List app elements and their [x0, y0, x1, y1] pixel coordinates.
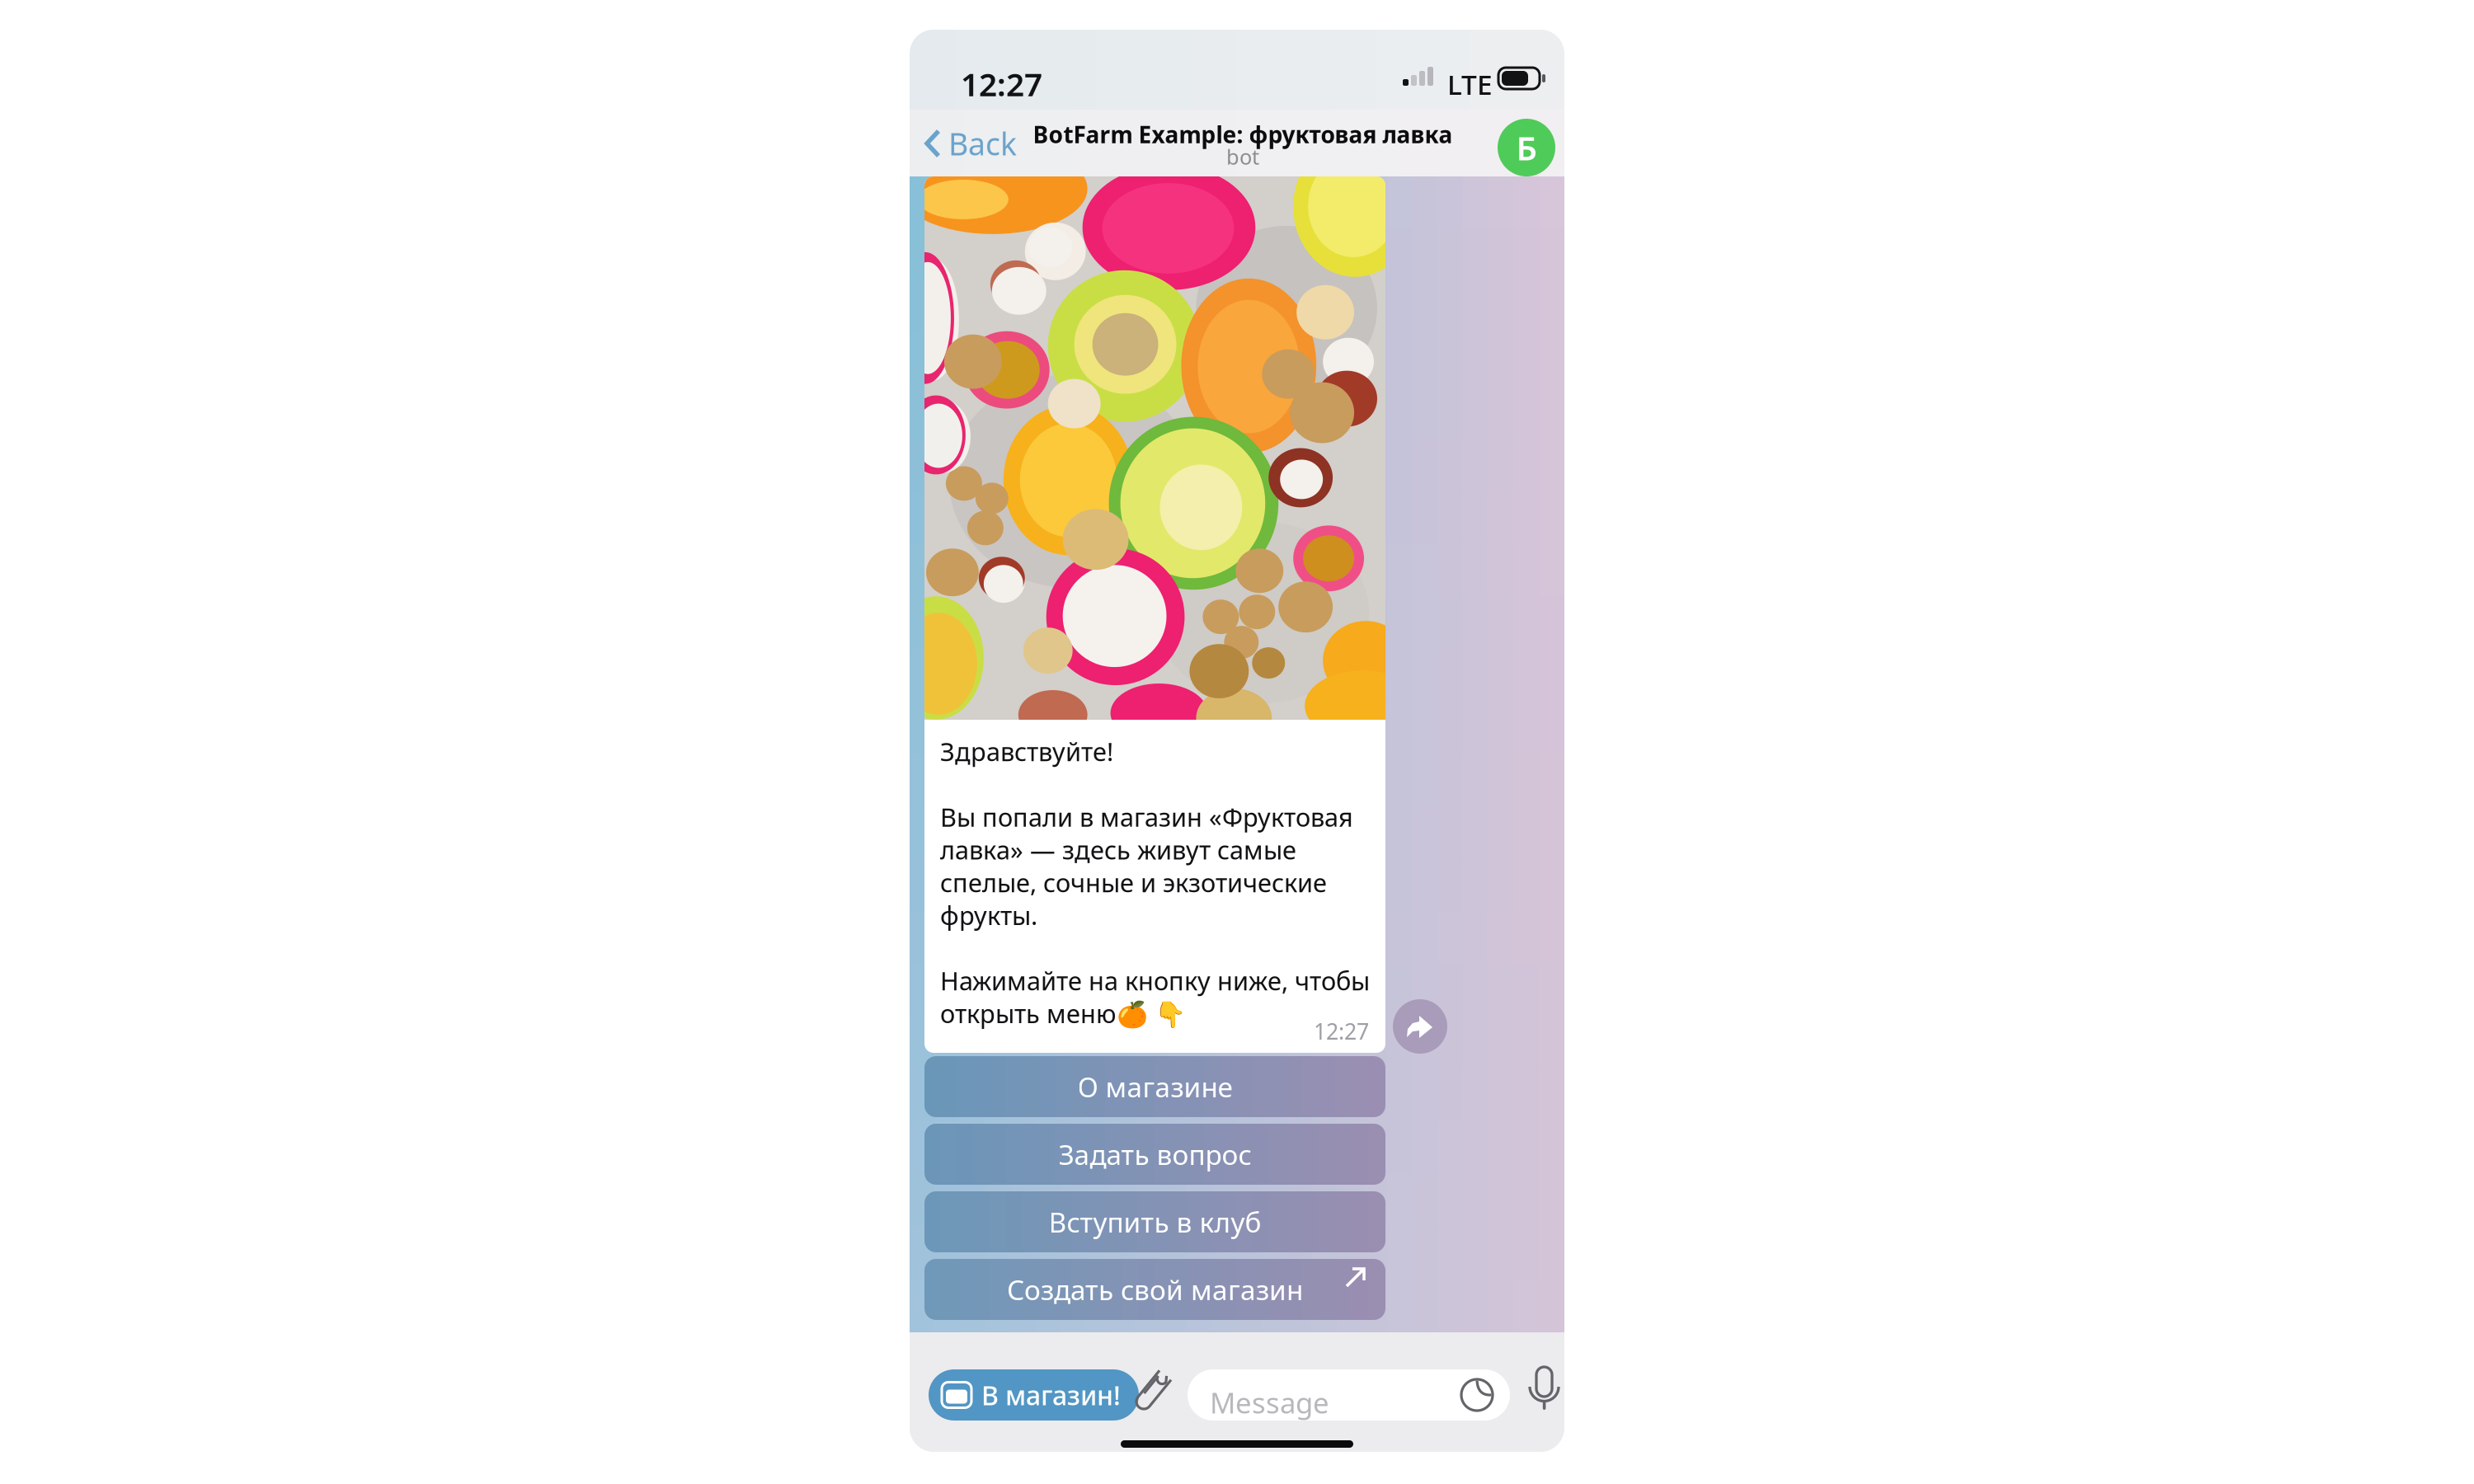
- staticText: Message: [1210, 1383, 1329, 1421]
- button[interactable]: Record voice message: [1526, 1365, 1563, 1413]
- staticText: Задать вопрос: [1058, 1136, 1251, 1173]
- button[interactable]: Back: [910, 120, 1025, 167]
- staticText: О магазине: [1077, 1068, 1232, 1105]
- staticText: Б: [1516, 126, 1537, 169]
- staticText: Здравствуйте! Вы попали в магазин «Фрукт…: [940, 735, 1370, 1030]
- staticText: В магазин!: [981, 1377, 1121, 1413]
- button[interactable]: Создать свой магазин: [924, 1259, 1385, 1320]
- button[interactable]: Задать вопрос: [924, 1124, 1385, 1185]
- staticText: 12:27: [961, 63, 1042, 105]
- button[interactable]: В магазин!: [929, 1369, 1139, 1421]
- button[interactable]: О магазине: [924, 1056, 1385, 1117]
- staticText: BotFarm Example: фруктовая лавка: [1033, 119, 1453, 150]
- staticText: bot: [1226, 143, 1259, 170]
- staticText: Создать свой магазин: [1007, 1271, 1303, 1308]
- button[interactable]: Stickers: [1461, 1379, 1493, 1411]
- button[interactable]: Chat profile: [1498, 119, 1555, 176]
- staticText: Back: [948, 123, 1017, 164]
- staticText: LTE: [1447, 66, 1493, 102]
- staticText: Вступить в клуб: [1049, 1204, 1261, 1240]
- button[interactable]: Attach file: [1134, 1367, 1177, 1413]
- button[interactable]: Forward message: [1393, 999, 1447, 1054]
- button[interactable]: Вступить в клуб: [924, 1191, 1385, 1252]
- staticText: 12:27: [1314, 1017, 1369, 1046]
